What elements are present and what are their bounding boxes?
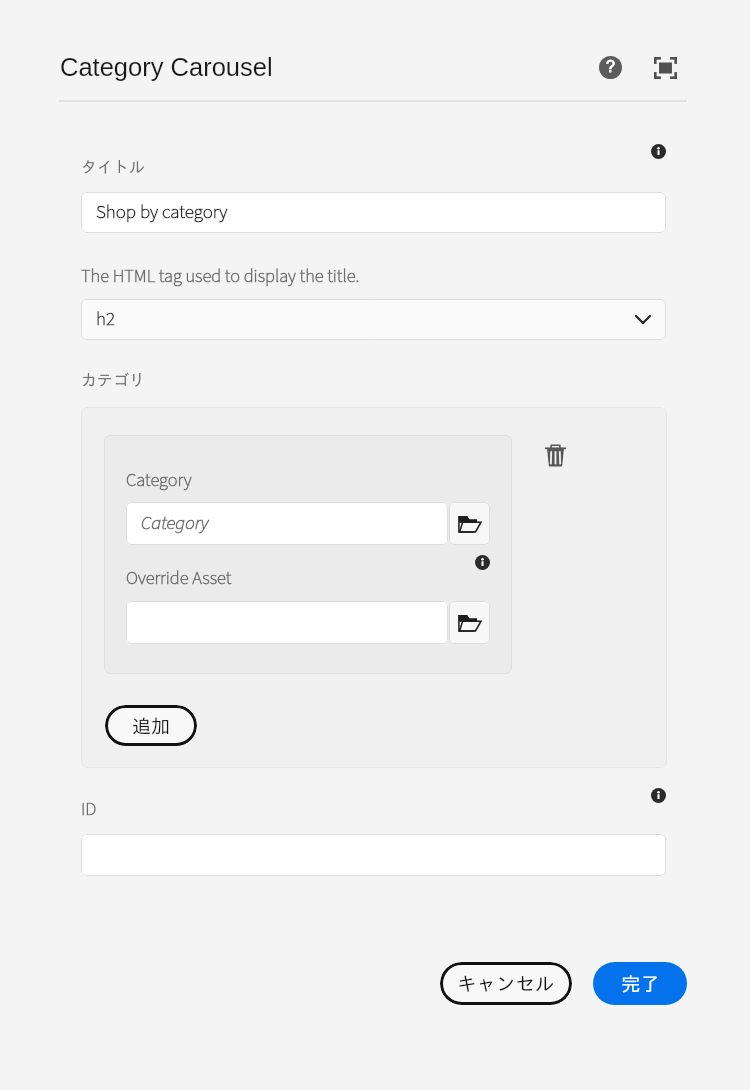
- staticText: ?: [606, 58, 615, 76]
- button[interactable]: Delete: [535, 435, 575, 475]
- staticText: ID: [81, 796, 97, 822]
- button[interactable]: Browse asset: [449, 601, 490, 644]
- button[interactable]: キャンセル: [440, 962, 572, 1005]
- staticText: Category: [141, 510, 209, 537]
- staticText: カテゴリ: [81, 372, 145, 388]
- button[interactable]: Information: [651, 788, 666, 803]
- staticText: Category: [126, 467, 192, 493]
- staticText: Override Asset: [126, 565, 232, 591]
- button[interactable]: Help: [594, 51, 627, 84]
- button[interactable]: Information: [475, 555, 490, 570]
- button[interactable]: Information: [651, 144, 666, 159]
- button[interactable]: Browse category: [449, 502, 490, 545]
- staticText: Category Carousel: [60, 53, 273, 81]
- staticText: 追加: [132, 716, 170, 735]
- button[interactable]: 完了: [593, 962, 687, 1005]
- button[interactable]: Category: [126, 502, 448, 545]
- staticText: Shop by category: [96, 199, 228, 226]
- button[interactable]: [126, 601, 448, 644]
- staticText: The HTML tag used to display the title.: [81, 263, 360, 289]
- staticText: タイトル: [81, 159, 145, 175]
- button[interactable]: 追加: [105, 705, 197, 746]
- staticText: 完了: [621, 974, 660, 994]
- staticText: h2: [96, 306, 115, 333]
- button[interactable]: [81, 834, 666, 876]
- button[interactable]: Shop by category: [81, 192, 666, 233]
- staticText: キャンセル: [457, 974, 555, 994]
- button[interactable]: h2: [81, 299, 666, 340]
- button[interactable]: Fullscreen: [649, 52, 681, 84]
